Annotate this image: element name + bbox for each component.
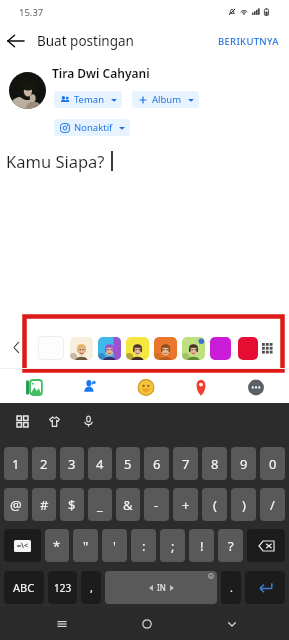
button[interactable] bbox=[38, 336, 64, 360]
staticText: ' bbox=[113, 537, 116, 555]
staticText: 4 bbox=[96, 455, 104, 473]
button[interactable]: & bbox=[116, 488, 140, 521]
button[interactable] bbox=[154, 337, 177, 360]
staticText: Teman bbox=[74, 93, 105, 106]
button[interactable]: _ bbox=[88, 488, 112, 521]
button[interactable]: More options bbox=[228, 372, 283, 403]
staticText: =\< bbox=[17, 541, 28, 551]
button[interactable] bbox=[238, 337, 258, 360]
staticText: 8 bbox=[211, 455, 219, 473]
button[interactable]: Enter bbox=[245, 571, 285, 604]
button[interactable]: - bbox=[144, 488, 169, 521]
staticText: Buat postingan bbox=[37, 32, 134, 50]
staticText: Tira Dwi Cahyani bbox=[52, 65, 150, 81]
button[interactable]: @ bbox=[4, 488, 28, 521]
button[interactable]: Nonaktif bbox=[54, 119, 130, 136]
button[interactable]: Stickers bbox=[44, 411, 64, 431]
button[interactable] bbox=[182, 337, 205, 360]
button[interactable]: # bbox=[32, 488, 56, 521]
button[interactable] bbox=[210, 337, 231, 360]
button[interactable]: Check in bbox=[173, 372, 228, 403]
button[interactable]: Voice input bbox=[78, 411, 98, 431]
button[interactable]: : bbox=[131, 529, 156, 562]
button[interactable]: 8 bbox=[202, 447, 227, 480]
staticText: 0 bbox=[269, 455, 277, 473]
button[interactable]: Previous stickers bbox=[7, 334, 26, 361]
button[interactable]: 1 bbox=[4, 447, 28, 480]
button[interactable]: Backspace bbox=[247, 529, 285, 562]
button[interactable]: Tag people bbox=[62, 372, 118, 403]
staticText: " bbox=[83, 537, 89, 555]
button[interactable]: Album bbox=[132, 91, 199, 108]
button[interactable]: , bbox=[81, 571, 101, 604]
button[interactable]: Feeling bbox=[118, 372, 173, 403]
staticText: # bbox=[40, 496, 49, 514]
button[interactable]: 6 bbox=[144, 447, 169, 480]
button[interactable]: ( bbox=[202, 488, 227, 521]
staticText: ) bbox=[242, 496, 246, 514]
button[interactable] bbox=[98, 337, 121, 360]
staticText: ( bbox=[213, 496, 217, 514]
button[interactable]: " bbox=[73, 529, 98, 562]
button[interactable]: / bbox=[260, 488, 285, 521]
button[interactable]: ABC bbox=[4, 571, 44, 604]
staticText: _ bbox=[97, 496, 103, 514]
staticText: 15.37 bbox=[19, 6, 44, 19]
button[interactable]: 4 bbox=[88, 447, 112, 480]
staticText: Kamu Siapa? bbox=[6, 150, 105, 172]
button[interactable] bbox=[126, 337, 149, 360]
staticText: @ bbox=[10, 496, 22, 514]
button[interactable]: ; bbox=[160, 529, 185, 562]
button[interactable]: ? bbox=[218, 529, 243, 562]
staticText: - bbox=[154, 496, 159, 514]
staticText: 5 bbox=[124, 455, 132, 473]
staticText: 2 bbox=[40, 455, 48, 473]
button[interactable] bbox=[70, 337, 93, 360]
staticText: ! bbox=[200, 537, 204, 555]
staticText: IN bbox=[157, 582, 166, 593]
button[interactable]: BERIKUTNYA bbox=[208, 29, 289, 54]
button[interactable]: Space bbox=[105, 571, 217, 604]
staticText: & bbox=[123, 496, 133, 514]
button[interactable]: 3 bbox=[60, 447, 84, 480]
button[interactable]: Symbols bbox=[4, 529, 41, 562]
button[interactable]: ! bbox=[189, 529, 214, 562]
button[interactable]: 9 bbox=[231, 447, 256, 480]
staticText: BERIKUTNYA bbox=[218, 35, 279, 48]
button[interactable]: ' bbox=[102, 529, 127, 562]
staticText: , bbox=[90, 580, 93, 595]
staticText: 123 bbox=[54, 581, 72, 595]
staticText: + bbox=[182, 496, 190, 514]
button[interactable]: Home bbox=[104, 607, 189, 640]
button[interactable]: All stickers bbox=[259, 337, 275, 360]
button[interactable]: Keyboard layouts bbox=[12, 411, 32, 431]
button[interactable]: 0 bbox=[260, 447, 285, 480]
staticText: ? bbox=[228, 537, 234, 555]
button[interactable]: Teman bbox=[54, 91, 122, 108]
button[interactable]: 2 bbox=[32, 447, 56, 480]
button[interactable]: Back bbox=[189, 607, 274, 640]
staticText: / bbox=[270, 496, 275, 514]
staticText: 6 bbox=[153, 455, 161, 473]
button[interactable]: Back bbox=[2, 27, 30, 55]
button[interactable]: 123 bbox=[48, 571, 77, 604]
button[interactable]: ) bbox=[231, 488, 256, 521]
staticText: Album bbox=[152, 93, 182, 106]
button[interactable]: * bbox=[45, 529, 69, 562]
staticText: . bbox=[230, 580, 233, 595]
staticText: 9 bbox=[240, 455, 248, 473]
button[interactable]: Photo bbox=[6, 372, 62, 403]
button[interactable]: Recent apps bbox=[20, 607, 104, 640]
button[interactable]: 7 bbox=[173, 447, 198, 480]
staticText: * bbox=[53, 537, 61, 555]
button[interactable]: . bbox=[221, 571, 241, 604]
staticText: : bbox=[142, 537, 146, 555]
staticText: 7 bbox=[182, 455, 190, 473]
staticText: ; bbox=[171, 537, 175, 555]
staticText: 1 bbox=[12, 455, 20, 473]
button[interactable]: + bbox=[173, 488, 198, 521]
staticText: ABC bbox=[13, 580, 35, 595]
staticText: 3 bbox=[68, 455, 76, 473]
button[interactable]: 5 bbox=[116, 447, 140, 480]
button[interactable]: $ bbox=[60, 488, 84, 521]
